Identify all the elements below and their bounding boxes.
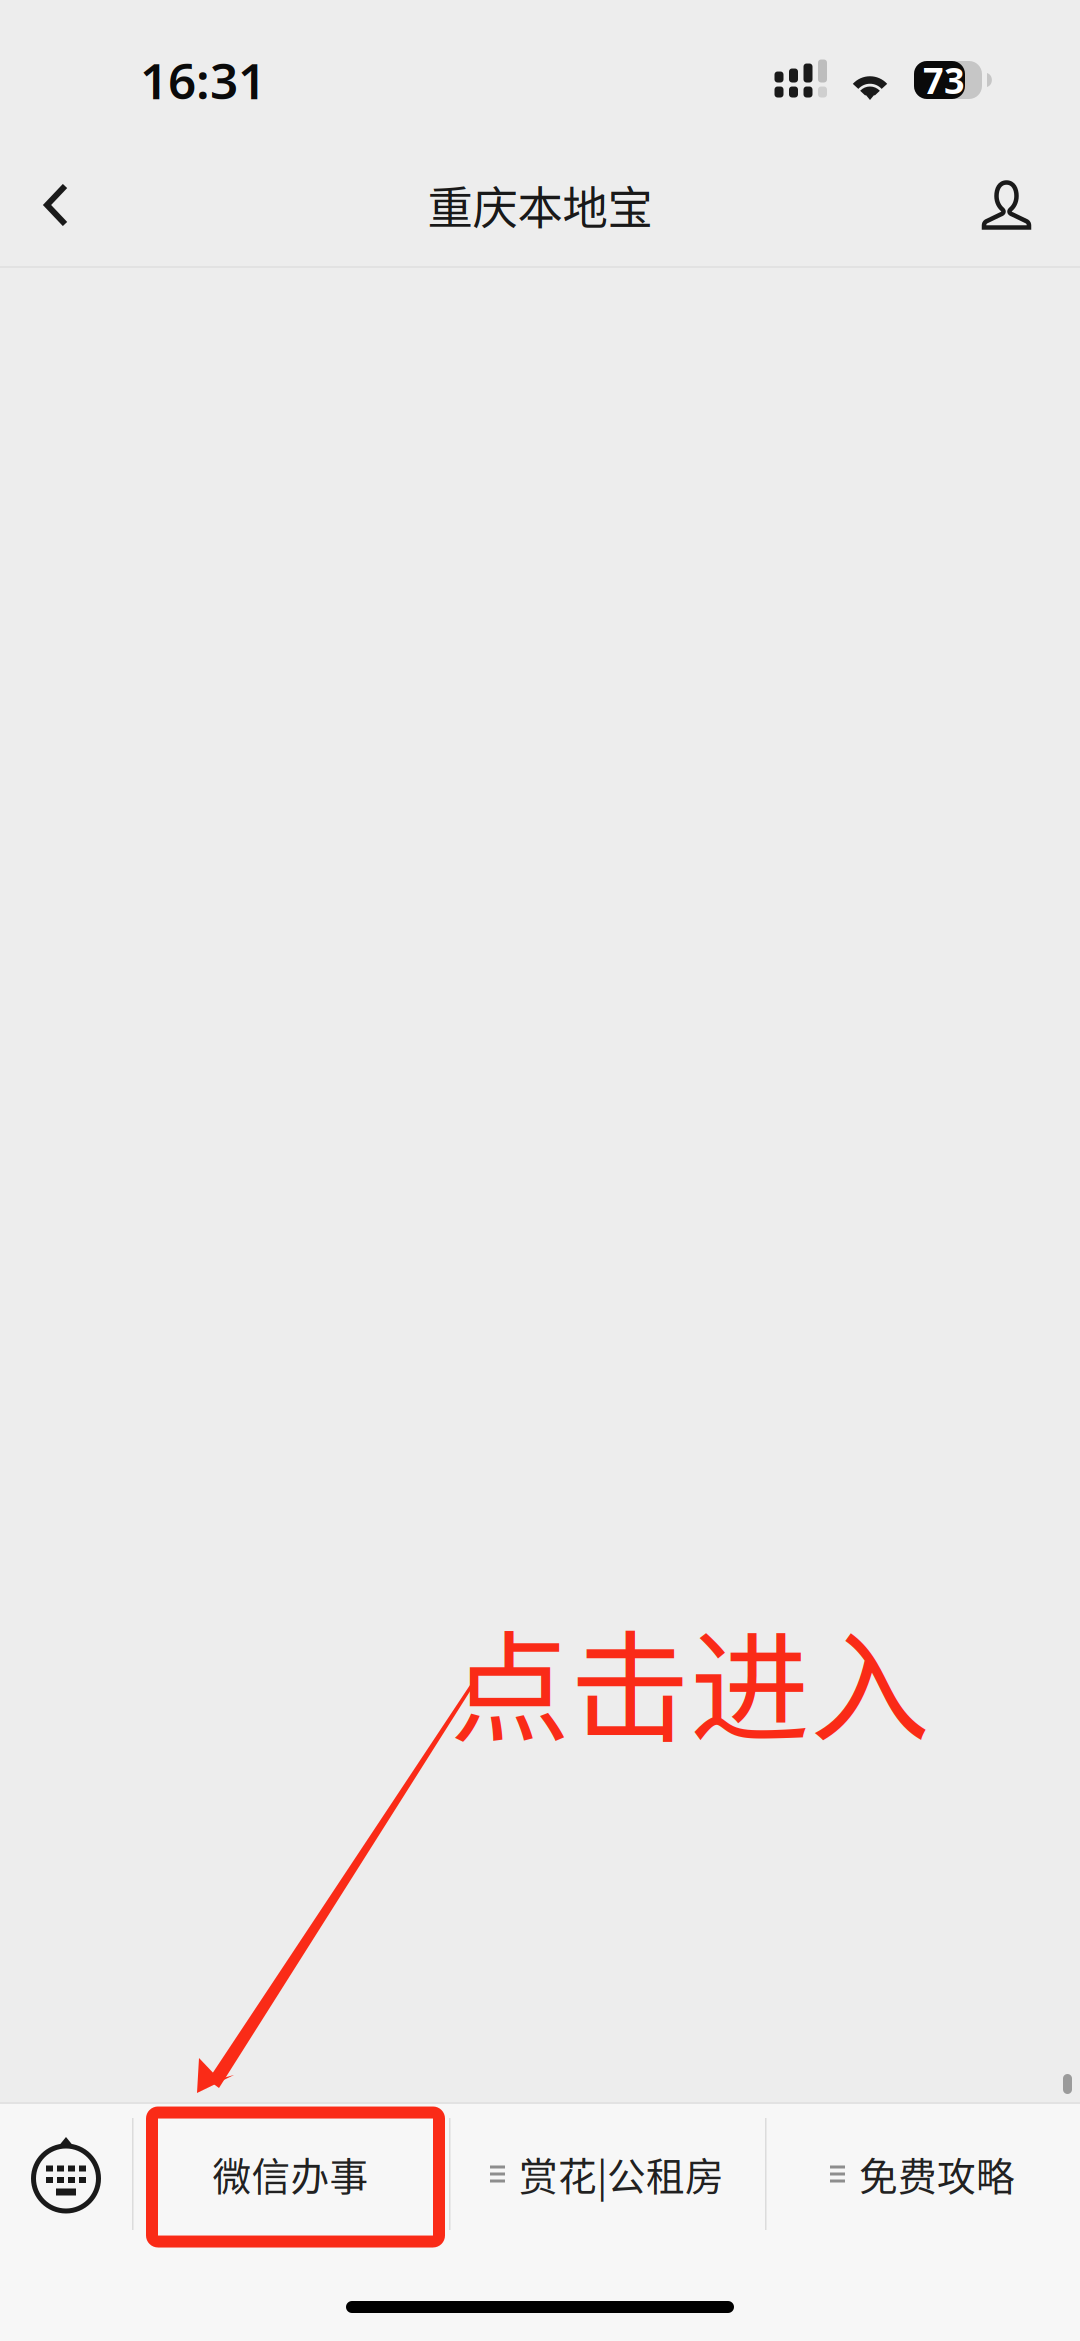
staticText: 重庆本地宝 (427, 172, 652, 238)
button[interactable]: 微信办事 (132, 2104, 449, 2244)
staticText: 赏花|公租房 (519, 2146, 724, 2202)
staticText: 16:31 (140, 47, 266, 113)
button[interactable]: 键盘输入 (0, 2104, 132, 2244)
staticText: 微信办事 (212, 2146, 368, 2202)
button[interactable]: 免费攻略 (765, 2104, 1080, 2244)
staticText: 点击进入 (450, 1593, 930, 1767)
button[interactable]: 公众号资料 (933, 138, 1080, 272)
staticText: 免费攻略 (859, 2146, 1015, 2202)
staticText: 73 (923, 56, 965, 104)
button[interactable]: 赏花|公租房 (449, 2104, 765, 2244)
button[interactable]: 返回 (0, 138, 112, 272)
